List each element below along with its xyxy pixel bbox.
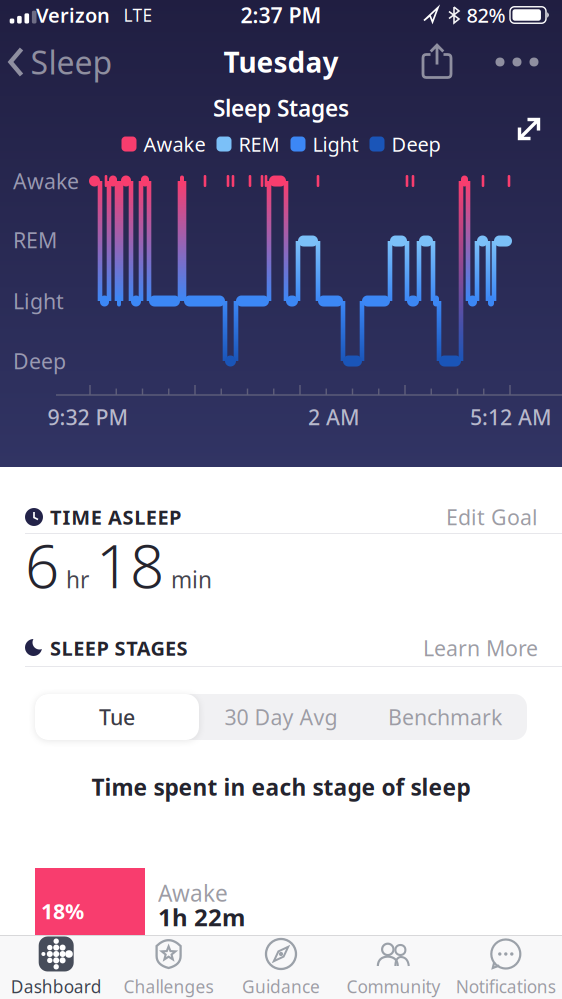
button[interactable]: Community [337,935,450,999]
staticText: Notifications [456,975,556,998]
button[interactable]: Edit Goal [446,503,538,531]
staticText: 9:32 PM [47,403,128,431]
staticText: Edit Goal [446,503,538,531]
staticText: Time spent in each stage of sleep [91,772,470,802]
staticText: Awake [158,878,228,908]
staticText: REM [238,131,279,157]
staticText: Awake [13,167,79,195]
staticText: Deep [13,347,66,375]
button[interactable]: More options [494,47,540,77]
staticText: Benchmark [388,703,502,731]
button[interactable]: Guidance [225,935,337,999]
staticText: Sleep Stages [213,93,349,123]
button[interactable]: Tue [35,694,199,740]
staticText: Light [13,287,64,315]
button[interactable]: Dashboard [0,935,112,999]
staticText: Guidance [242,975,320,998]
staticText: TIME ASLEEP [50,504,181,530]
button[interactable]: 30 Day Avg [199,694,363,740]
staticText: SLEEP STAGES [50,635,188,661]
button[interactable]: Benchmark [363,694,527,740]
button[interactable]: Learn More [423,634,538,662]
staticText: 2:37 PM [240,1,321,29]
staticText: 18 [96,525,164,605]
staticText: Verizon [36,2,110,28]
staticText: Community [346,975,440,998]
button[interactable]: Sleep [7,41,112,83]
staticText: hr [66,564,89,594]
button[interactable]: Notifications [450,935,562,999]
staticText: REM [13,226,57,254]
staticText: Awake [143,131,205,157]
staticText: min [171,564,212,594]
staticText: 2 AM [308,403,360,431]
staticText: 5:12 AM [470,403,552,431]
staticText: Challenges [124,975,214,998]
button[interactable]: Expand chart [516,116,542,142]
staticText: Tue [99,703,135,731]
staticText: 1h 22m [158,901,245,933]
button[interactable]: Share [421,43,452,78]
staticText: LTE [123,3,152,26]
staticText: Tuesday [223,43,338,81]
staticText: 18% [41,897,84,925]
staticText: 82% [466,2,505,28]
staticText: Deep [391,131,440,157]
staticText: Sleep [30,41,112,83]
staticText: Learn More [423,634,538,662]
button[interactable]: Challenges [112,935,225,999]
staticText: 30 Day Avg [224,703,337,731]
staticText: Light [312,131,358,157]
staticText: Dashboard [11,975,102,998]
staticText: 6 [25,525,59,605]
